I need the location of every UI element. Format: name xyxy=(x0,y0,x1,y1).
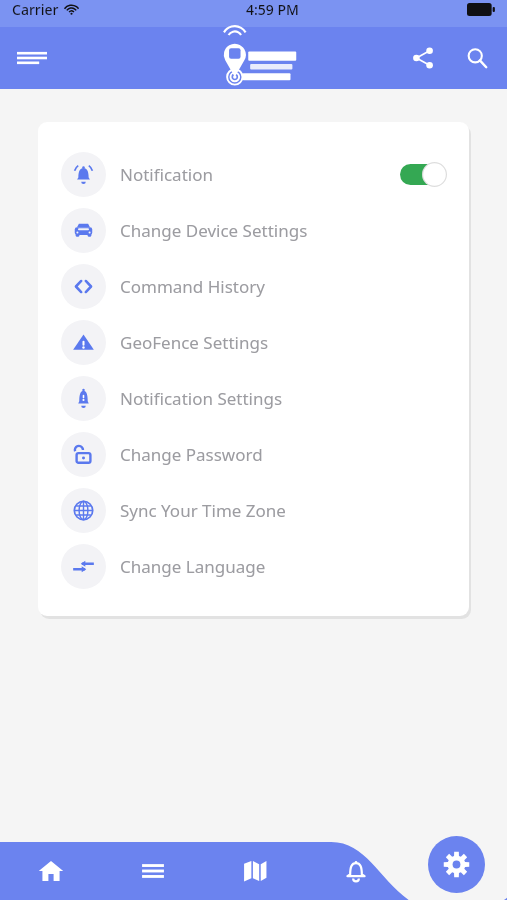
staticText: Sync Your Time Zone xyxy=(120,499,286,522)
staticText: Change Password xyxy=(120,443,263,466)
button[interactable]: Change Password xyxy=(38,426,469,482)
button[interactable]: Change Language xyxy=(38,538,469,594)
button[interactable]: Sync Your Time Zone xyxy=(38,482,469,538)
button[interactable]: Menu xyxy=(8,34,56,82)
staticText: Carrier xyxy=(12,0,59,19)
staticText: Notification xyxy=(120,163,213,186)
button[interactable]: Notification Settings xyxy=(38,370,469,426)
staticText: 4:59 PM xyxy=(246,0,299,19)
button[interactable]: Command History xyxy=(38,258,469,314)
staticText: Notification Settings xyxy=(120,387,283,410)
button[interactable]: Notification toggle xyxy=(400,161,447,187)
button[interactable]: Notifications xyxy=(305,842,406,900)
button[interactable]: GeoFence Settings xyxy=(38,314,469,370)
staticText: Change Device Settings xyxy=(120,219,308,242)
staticText: GeoFence Settings xyxy=(120,331,269,354)
button[interactable]: Share xyxy=(401,36,445,80)
staticText: Change Language xyxy=(120,555,266,578)
staticText: Command History xyxy=(120,275,265,298)
button[interactable]: Home xyxy=(0,842,102,900)
button[interactable]: Map xyxy=(204,842,305,900)
button[interactable]: Search xyxy=(455,36,499,80)
button[interactable]: Notification xyxy=(38,146,469,202)
button[interactable]: List xyxy=(102,842,204,900)
button[interactable]: Settings xyxy=(428,836,485,893)
button[interactable]: Change Device Settings xyxy=(38,202,469,258)
